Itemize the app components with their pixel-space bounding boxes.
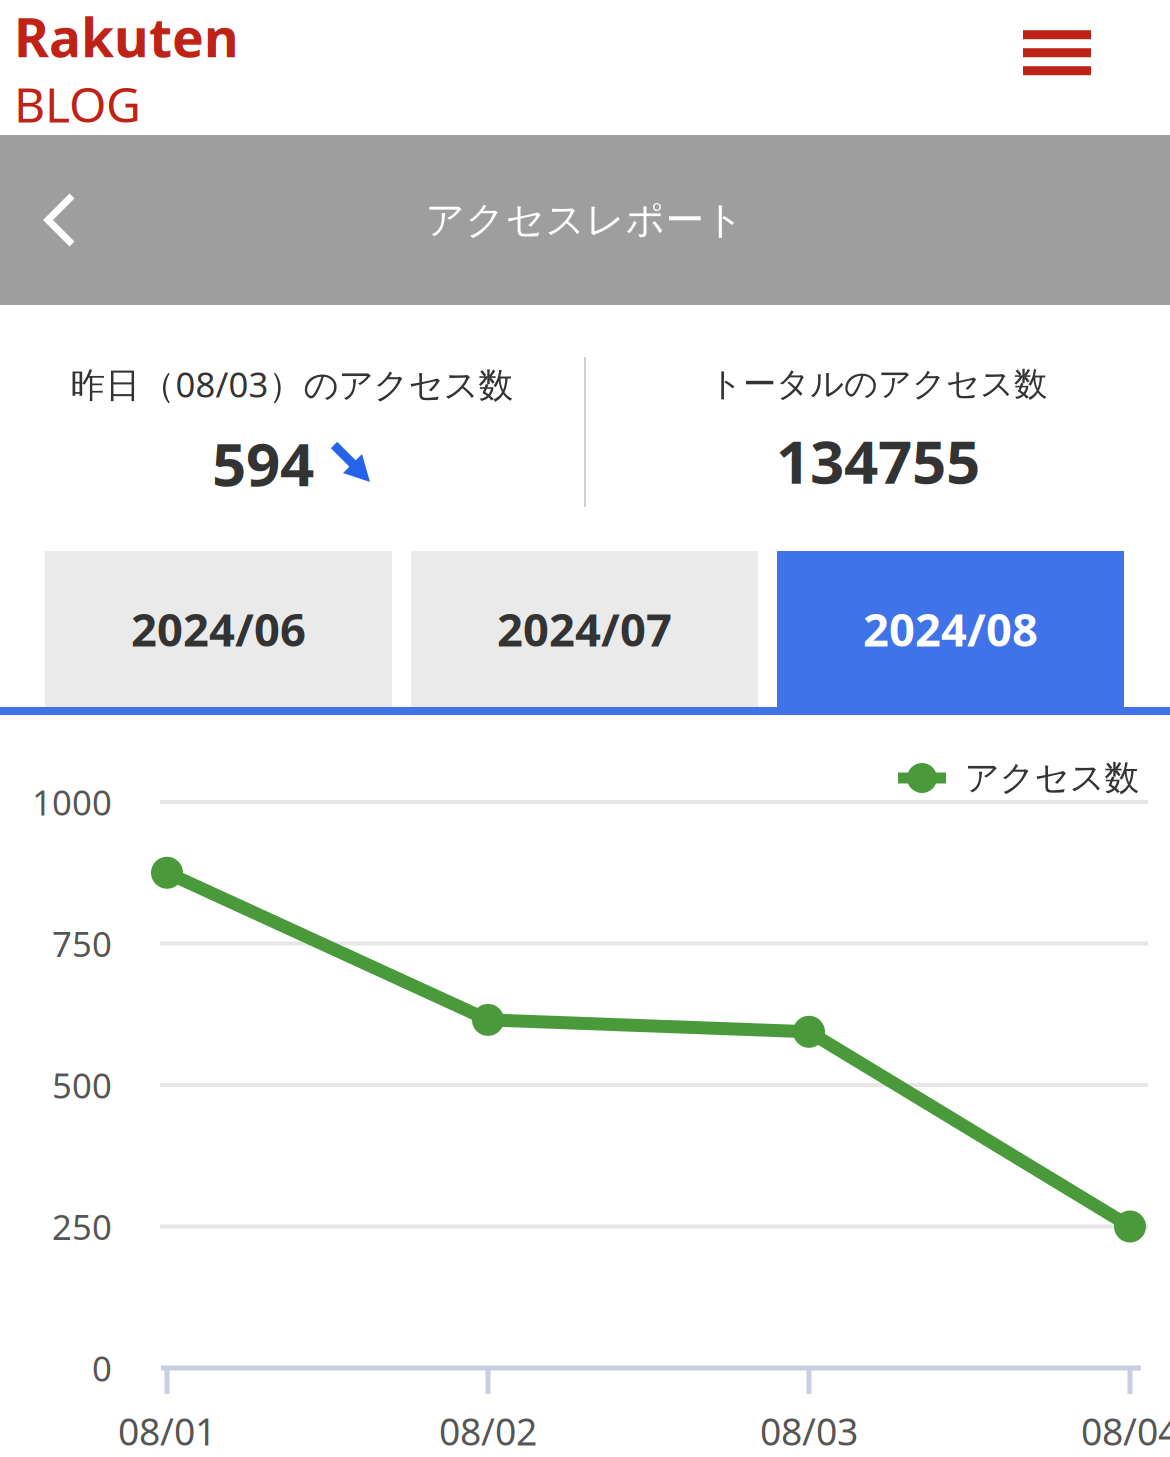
staticText: 08/02 <box>439 1406 537 1456</box>
staticText: 08/04 <box>1081 1406 1170 1456</box>
button[interactable]: Menu <box>1003 0 1170 95</box>
button[interactable]: 2024/06 <box>45 551 392 707</box>
staticText: 500 <box>52 1062 112 1108</box>
staticText: アクセスレポート <box>425 196 744 244</box>
staticText: 594 <box>212 423 314 503</box>
staticText: トータルのアクセス数 <box>709 364 1047 405</box>
staticText: 134755 <box>776 421 980 500</box>
staticText: アクセス数 <box>964 757 1139 799</box>
staticText: Rakuten <box>14 1 239 72</box>
staticText: 750 <box>52 920 112 966</box>
button[interactable]: Back <box>0 152 106 288</box>
staticText: 08/03 <box>760 1406 858 1456</box>
staticText: 2024/07 <box>497 599 672 659</box>
staticText: 2024/08 <box>863 599 1038 659</box>
staticText: 250 <box>52 1203 112 1249</box>
staticText: 1000 <box>32 779 112 825</box>
button[interactable]: 2024/07 <box>411 551 758 707</box>
staticText: BLOG <box>14 72 141 136</box>
button[interactable]: 2024/08 <box>777 551 1124 707</box>
staticText: 08/01 <box>118 1406 216 1456</box>
staticText: 2024/06 <box>131 599 306 659</box>
staticText: 昨日（08/03）のアクセス数 <box>70 361 513 407</box>
staticText: 0 <box>92 1345 112 1391</box>
